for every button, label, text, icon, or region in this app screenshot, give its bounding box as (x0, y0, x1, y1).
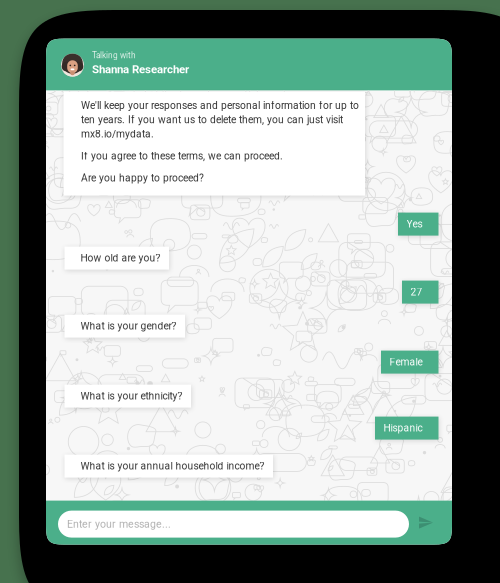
button[interactable]: How old are you? (64, 247, 169, 270)
staticText: What is your ethnicity? (80, 390, 182, 402)
button[interactable]: Yes (46, 213, 438, 236)
staticText: How old are you? (80, 252, 160, 264)
button[interactable]: Talking with (46, 39, 452, 91)
staticText: 27 (410, 286, 422, 298)
button[interactable]: What is your annual household income? (64, 455, 273, 478)
button[interactable]: Enter your message... (58, 511, 409, 538)
button[interactable]: What is your gender? (64, 315, 185, 338)
button[interactable]: Hispanic (46, 417, 438, 440)
staticText: We'll keep your responses and personal i… (81, 100, 359, 140)
button[interactable]: Send (414, 511, 438, 535)
staticText: Female (389, 356, 422, 368)
staticText: Are you happy to proceed? (81, 172, 204, 184)
staticText: Talking with (92, 51, 136, 60)
staticText: Enter your message... (67, 518, 171, 530)
button[interactable]: Female (46, 351, 438, 374)
button[interactable]: 27 (46, 281, 438, 304)
button[interactable]: What is your ethnicity? (64, 385, 191, 408)
staticText: Yes (406, 218, 422, 230)
staticText: What is your annual household income? (80, 460, 264, 472)
staticText: What is your gender? (80, 320, 176, 332)
staticText: If you agree to these terms, we can proc… (81, 150, 283, 162)
staticText: Shanna Researcher (92, 63, 189, 76)
staticText: Hispanic (383, 422, 422, 434)
